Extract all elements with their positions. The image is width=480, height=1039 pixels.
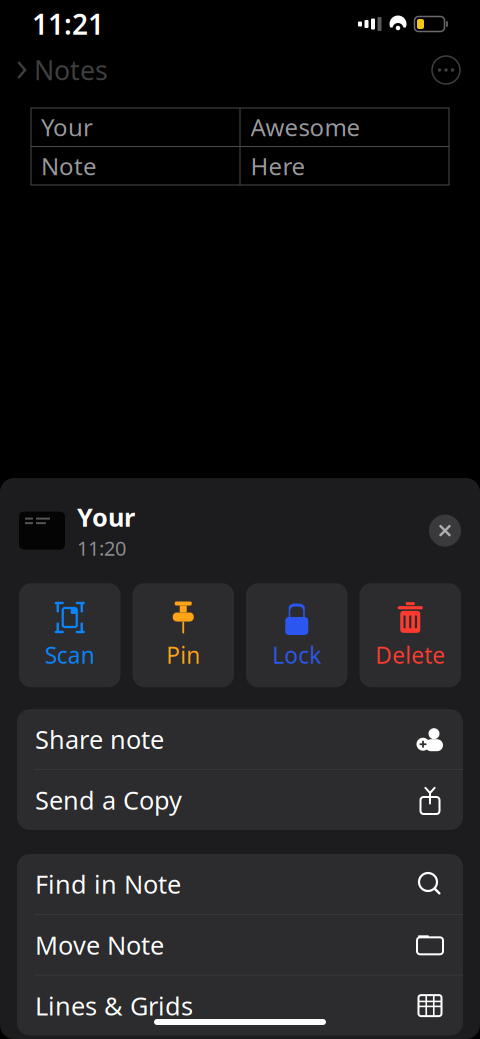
staticText: Notes [34,52,108,88]
button[interactable]: Pin [132,583,234,687]
staticText: 11:21 [32,5,104,43]
button[interactable]: Send a Copy [17,770,463,830]
button[interactable]: Share note [17,709,463,769]
staticText: Send a Copy [35,783,182,817]
staticText: Here [250,150,305,182]
staticText: Move Note [35,928,164,962]
button[interactable]: More options [428,52,464,88]
button[interactable]: Move Note [17,915,463,975]
staticText: Find in Note [35,867,181,901]
staticText: 11:20 [77,535,126,561]
button[interactable]: Notes [16,46,108,94]
staticText: Scan [45,640,95,670]
button[interactable]: Scan [19,583,120,687]
staticText: Share note [35,722,164,756]
button[interactable]: Find in Note [17,854,463,914]
button[interactable]: Lock [246,583,347,687]
staticText: Lock [272,640,321,670]
staticText: Delete [375,640,445,670]
staticText: Awesome [250,111,360,143]
button[interactable]: Close [423,509,467,553]
button[interactable]: Lines & Grids [17,976,463,1036]
button[interactable]: Delete [359,583,461,687]
staticText: Pin [166,640,200,670]
staticText: Lines & Grids [35,989,193,1022]
staticText: Note [41,150,97,182]
staticText: Your [41,111,93,143]
staticText: Your [77,500,135,534]
